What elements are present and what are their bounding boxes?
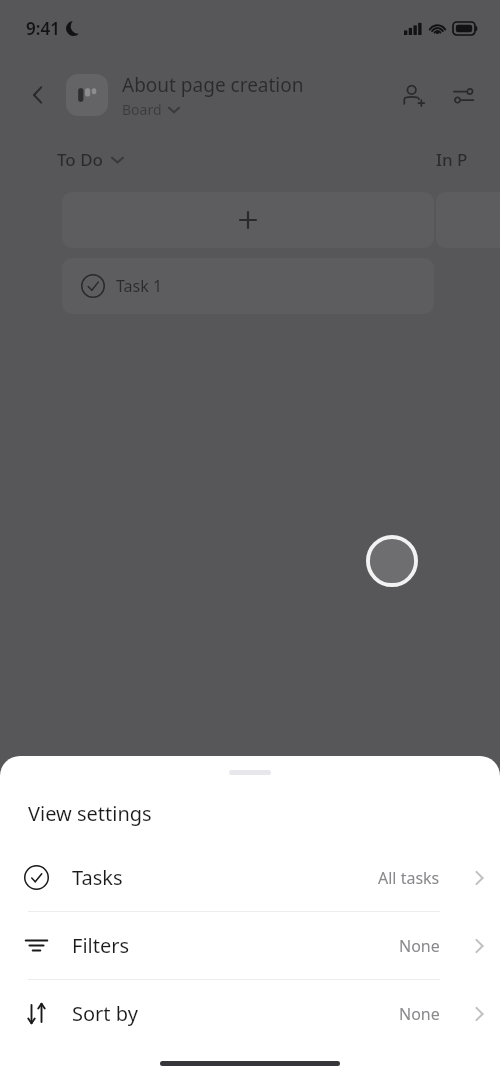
button[interactable]: View settings — [442, 74, 484, 116]
staticText: Filters — [72, 932, 399, 959]
staticText: Board — [122, 100, 162, 119]
staticText: View settings — [28, 800, 152, 827]
button[interactable]: Sort by — [0, 980, 500, 1047]
staticText: About page creation — [122, 72, 304, 98]
staticText: To Do — [57, 148, 103, 171]
button[interactable]: To Do — [57, 148, 124, 171]
button[interactable]: Board — [122, 100, 180, 119]
staticText: None — [399, 1003, 440, 1025]
staticText: All tasks — [378, 867, 440, 889]
button[interactable]: Back — [16, 73, 60, 117]
staticText: Sort by — [72, 1000, 399, 1027]
staticText: 9:41 — [26, 17, 60, 40]
staticText: Task 1 — [116, 275, 163, 297]
staticText: Tasks — [72, 864, 378, 891]
button[interactable]: Task 1 — [62, 258, 434, 314]
staticText: None — [399, 935, 440, 957]
staticText: In P — [436, 148, 468, 171]
button[interactable]: Tasks — [0, 844, 500, 911]
button[interactable]: Add member — [392, 74, 434, 116]
button[interactable]: Filters — [0, 912, 500, 979]
button[interactable]: Create — [366, 535, 418, 587]
